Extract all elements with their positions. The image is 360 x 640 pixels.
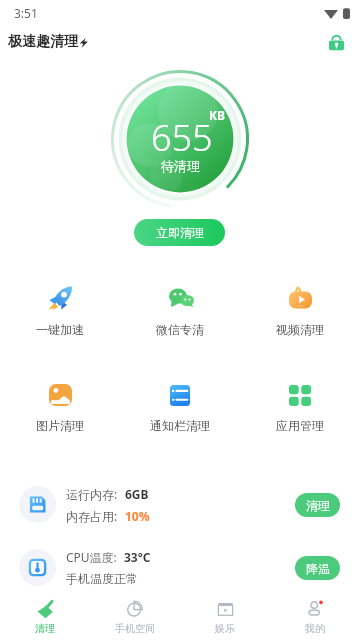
button[interactable]: 手机空间 [90,594,180,640]
staticText: 手机空间 [115,622,155,635]
staticText: CPU温度: [66,549,117,565]
staticText: 图片清理 [36,418,84,433]
staticText: 清理 [306,498,330,513]
staticText: 内存占用: [66,508,118,524]
button[interactable]: 图片清理 [0,381,120,433]
button[interactable]: 我的 [270,594,360,640]
button[interactable]: 通知栏清理 [120,381,240,433]
button[interactable]: 视频清理 [240,283,360,337]
staticText: 娱乐 [215,622,235,635]
staticText: 应用管理 [276,418,324,433]
button[interactable]: 微信专清 [120,283,240,337]
staticText: 待清理 [161,158,200,174]
staticText: 655 [151,113,213,162]
staticText: 立即清理 [156,225,204,240]
staticText: 运行内存: [66,486,118,502]
button[interactable]: 降温 [295,556,340,580]
staticText: 10% [125,508,150,524]
staticText: 一键加速 [36,322,84,337]
button[interactable]: 清理 [295,493,340,517]
button[interactable]: Lock [325,31,347,53]
button[interactable]: 应用管理 [240,381,360,433]
button[interactable]: 一键加速 [0,283,120,337]
staticText: 手机温度正常 [66,571,138,586]
staticText: 降温 [306,561,330,576]
staticText: 微信专清 [156,322,204,337]
button[interactable]: 清理 [0,594,90,640]
staticText: 6GB [125,486,149,502]
staticText: 通知栏清理 [150,418,210,433]
staticText: 33°C [124,549,151,565]
staticText: 极速趣清理 [8,33,78,51]
staticText: 清理 [35,622,55,635]
button[interactable]: 娱乐 [180,594,270,640]
staticText: 3:51 [14,5,38,21]
staticText: KB [209,107,225,123]
staticText: 我的 [305,622,325,635]
staticText: 视频清理 [276,322,324,337]
button[interactable]: 立即清理 [134,219,225,246]
